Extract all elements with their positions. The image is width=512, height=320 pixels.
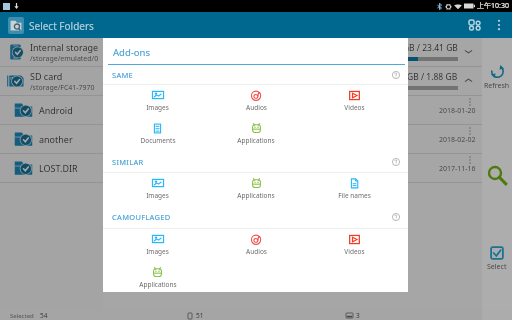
staticText: Images	[146, 247, 169, 256]
staticText: 51	[196, 311, 204, 320]
button[interactable]: Grid view	[463, 14, 485, 36]
staticText: 上午10:30	[477, 1, 509, 11]
staticText: Videos	[344, 103, 365, 112]
staticText: /storage/emulated/0	[30, 54, 99, 64]
staticText: Applications	[139, 280, 177, 289]
button[interactable]: Videos	[305, 229, 403, 262]
staticText: Select Folders	[29, 19, 94, 33]
staticText: CAMOUFLAGED	[112, 212, 171, 222]
staticText: Images	[146, 103, 169, 112]
button[interactable]: Applications	[108, 262, 207, 292]
button[interactable]: Applications	[207, 173, 305, 206]
button[interactable]: SIMILAR	[103, 151, 408, 172]
staticText: 3	[356, 311, 360, 320]
staticText: another	[39, 133, 73, 145]
button[interactable]: CAMOUFLAGED	[103, 206, 408, 228]
button[interactable]: Images	[108, 229, 207, 262]
button[interactable]: LOST.DIR	[0, 154, 103, 182]
button[interactable]: Audios	[207, 229, 305, 262]
button[interactable]: 2017-11-16	[103, 154, 482, 183]
button[interactable]: Internal storage	[0, 38, 103, 66]
button[interactable]: File names	[305, 173, 403, 206]
button[interactable]: Search	[482, 162, 512, 188]
button[interactable]: Refresh	[482, 64, 512, 91]
button[interactable]: Images	[108, 173, 207, 206]
staticText: Audios	[246, 247, 267, 256]
staticText: Videos	[344, 247, 365, 256]
staticText: Selected	[10, 312, 34, 320]
staticText: Internal storage	[30, 41, 99, 53]
button[interactable]: Images	[108, 85, 207, 118]
staticText: 21.87 GB / 23.41 GB	[379, 42, 458, 54]
staticText: File names	[338, 191, 371, 200]
staticText: SD card	[30, 70, 63, 82]
staticText: LOST.DIR	[39, 162, 78, 174]
button[interactable]: another	[0, 125, 103, 153]
staticText: Android	[39, 104, 73, 116]
staticText: 54	[40, 311, 48, 320]
staticText: Add-ons	[113, 46, 150, 59]
staticText: Applications	[237, 191, 275, 200]
staticText: SIMILAR	[112, 157, 144, 167]
staticText: 1.79 GB / 1.88 GB	[388, 71, 458, 83]
button[interactable]: Documents	[108, 118, 207, 151]
button[interactable]: Videos	[305, 85, 403, 118]
staticText: Applications	[237, 136, 275, 145]
staticText: 2017-11-16	[439, 164, 476, 174]
button[interactable]: 2018-01-20	[103, 96, 482, 125]
staticText: SAME	[112, 70, 134, 80]
button[interactable]: SD card	[0, 67, 103, 95]
staticText: 2018-02-02	[439, 135, 476, 145]
button[interactable]: Applications	[207, 118, 305, 151]
staticText: /storage/FC41-7970	[30, 83, 95, 93]
staticText: Select	[487, 262, 507, 272]
button[interactable]: Select	[482, 246, 512, 272]
staticText: Refresh	[484, 81, 510, 91]
button[interactable]: 21.87 GB / 23.41 GB	[103, 38, 482, 67]
staticText: Images	[146, 191, 169, 200]
button[interactable]: 1.79 GB / 1.88 GB	[103, 67, 482, 96]
staticText: Audios	[246, 103, 267, 112]
button[interactable]: SAME	[103, 65, 408, 84]
button[interactable]: Android	[0, 96, 103, 124]
button[interactable]: 2018-02-02	[103, 125, 482, 154]
staticText: 2018-01-20	[439, 106, 476, 116]
staticText: Documents	[140, 136, 176, 145]
button[interactable]: More options	[488, 14, 510, 36]
button[interactable]: Up	[7, 17, 24, 34]
button[interactable]: Audios	[207, 85, 305, 118]
